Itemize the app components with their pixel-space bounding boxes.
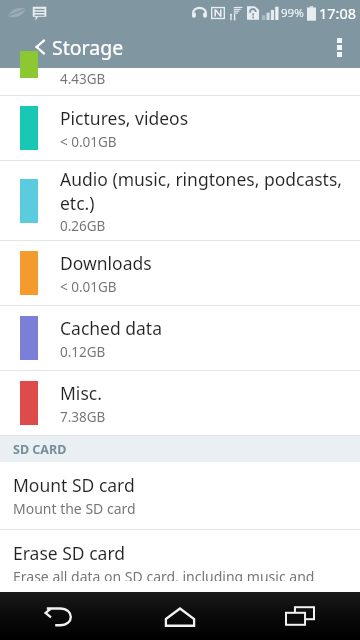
staticText: SD CARD [13, 441, 67, 458]
staticText: etc.) [60, 191, 95, 215]
button[interactable]: Home [120, 592, 240, 640]
button[interactable]: Mount SD card [0, 462, 360, 529]
button[interactable]: Cached data [0, 306, 360, 370]
staticText: Mount SD card [13, 473, 135, 497]
button[interactable]: Erase SD card [0, 530, 360, 592]
button[interactable]: Downloads [0, 241, 360, 305]
staticText: Cached data [60, 316, 162, 340]
staticText: 99% [281, 5, 304, 21]
button[interactable]: Audio (music, ringtones, podcasts, [0, 161, 360, 240]
staticText: Storage [52, 34, 124, 61]
button[interactable]: Recent apps [240, 592, 360, 640]
button[interactable]: Back [0, 592, 120, 640]
staticText: 7.38GB [60, 408, 106, 426]
button[interactable]: More options [318, 26, 360, 68]
staticText: Erase all data on SD card, including mus… [13, 567, 315, 581]
staticText: Audio (music, ringtones, podcasts, [60, 167, 343, 191]
staticText: Pictures, videos [60, 106, 189, 130]
button[interactable]: Pictures, videos [0, 96, 360, 160]
staticText: 4.43GB [60, 70, 106, 88]
button[interactable]: Misc. [0, 371, 360, 435]
staticText: < 0.01GB [60, 278, 117, 296]
staticText: Misc. [60, 381, 102, 405]
staticText: Mount the SD card [13, 499, 136, 518]
button[interactable]: Storage [0, 26, 360, 68]
staticText: 17:08 [319, 3, 357, 23]
button[interactable]: 4.43GB [0, 68, 360, 95]
staticText: < 0.01GB [60, 133, 117, 151]
staticText: 0.26GB [60, 217, 106, 235]
staticText: Downloads [60, 251, 152, 275]
staticText: Erase SD card [13, 541, 126, 565]
staticText: 0.12GB [60, 343, 106, 361]
